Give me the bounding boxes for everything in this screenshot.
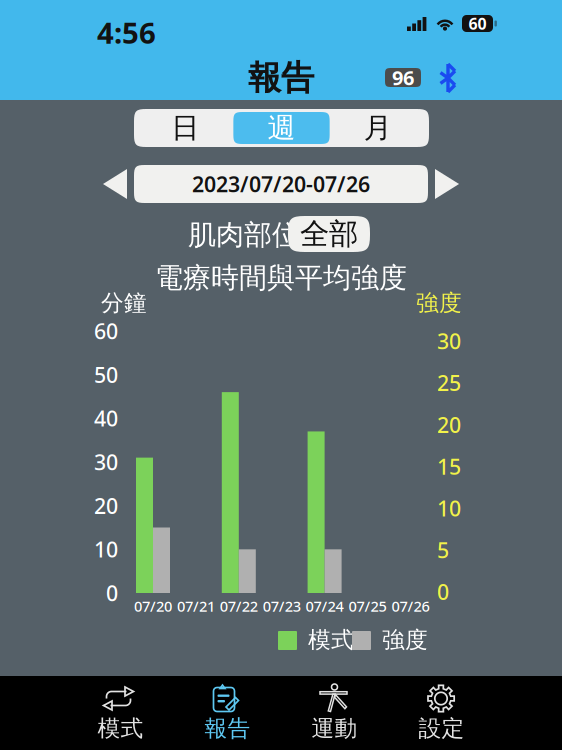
staticText: 5	[437, 536, 449, 564]
staticText: 30	[437, 327, 461, 355]
staticText: 07/20	[134, 596, 172, 616]
staticText: 60	[94, 317, 118, 345]
button[interactable]: 週	[233, 112, 330, 144]
staticText: 07/22	[220, 596, 258, 616]
staticText: 週	[267, 111, 295, 145]
button[interactable]: 運動	[281, 678, 388, 747]
staticText: 07/26	[391, 596, 429, 616]
staticText: 模式	[97, 715, 143, 742]
staticText: 2023/07/20-07/26	[192, 170, 370, 198]
staticText: 07/21	[177, 596, 215, 616]
staticText: 模式	[308, 626, 354, 654]
button[interactable]: 日	[137, 112, 233, 144]
staticText: 20	[94, 491, 118, 520]
staticText: 20	[437, 410, 461, 439]
button[interactable]: 設定	[388, 678, 495, 747]
staticText: 07/25	[348, 596, 386, 616]
staticText: 10	[437, 494, 461, 522]
staticText: 4:56	[97, 13, 156, 52]
staticText: 強度	[382, 626, 428, 654]
staticText: 25	[437, 369, 461, 397]
staticText: 月	[364, 111, 392, 145]
staticText: 設定	[418, 715, 464, 742]
staticText: 96	[392, 64, 414, 91]
staticText: 50	[94, 360, 118, 389]
staticText: 分鐘	[101, 289, 147, 317]
staticText: 07/23	[263, 596, 301, 616]
staticText: 報告	[204, 715, 250, 742]
staticText: 報告	[248, 57, 314, 98]
staticText: 日	[171, 111, 199, 145]
staticText: 0	[106, 579, 118, 607]
staticText: 60	[468, 13, 486, 34]
staticText: 全部	[300, 216, 358, 252]
staticText: 30	[94, 448, 118, 476]
button[interactable]: 月	[330, 112, 426, 144]
staticText: 運動	[311, 715, 357, 742]
staticText: 10	[94, 535, 118, 563]
button[interactable]: 報告	[174, 678, 281, 747]
button[interactable]: Previous week	[101, 167, 129, 201]
staticText: 40	[94, 404, 118, 432]
staticText: 強度	[416, 289, 462, 317]
staticText: 肌肉部位	[188, 218, 300, 252]
staticText: 15	[437, 452, 461, 480]
button[interactable]: Next week	[433, 167, 461, 201]
button[interactable]: 模式	[67, 678, 174, 747]
staticText: 電療時間與平均強度	[155, 261, 407, 295]
staticText: 0	[437, 578, 449, 606]
staticText: 07/24	[306, 596, 344, 616]
